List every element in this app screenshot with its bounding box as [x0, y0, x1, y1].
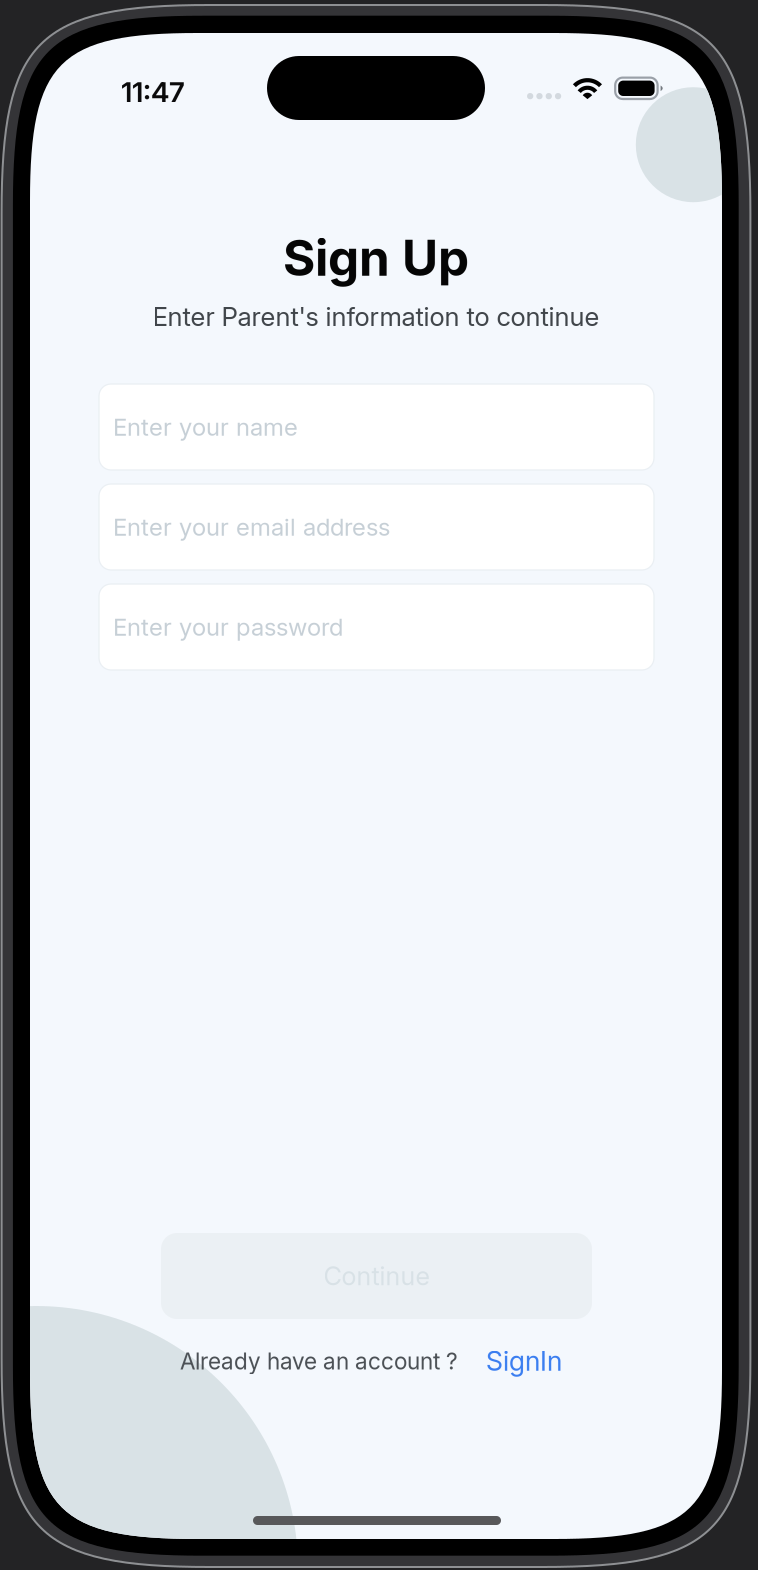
staticText: Enter your name: [113, 412, 298, 441]
staticText: 11:47: [121, 75, 185, 109]
staticText: Continue: [323, 1261, 429, 1291]
button[interactable]: Enter your password: [99, 584, 654, 670]
staticText: Enter your password: [113, 612, 343, 641]
staticText: Sign Up: [283, 228, 469, 288]
button[interactable]: SignIn: [486, 1345, 562, 1377]
staticText: SignIn: [486, 1345, 562, 1377]
button[interactable]: Enter your name: [99, 384, 654, 470]
staticText: Enter Parent's information to continue: [152, 301, 599, 332]
staticText: Already have an account ?: [180, 1347, 458, 1375]
staticText: Enter your email address: [113, 512, 390, 541]
button[interactable]: Enter your email address: [99, 484, 654, 570]
